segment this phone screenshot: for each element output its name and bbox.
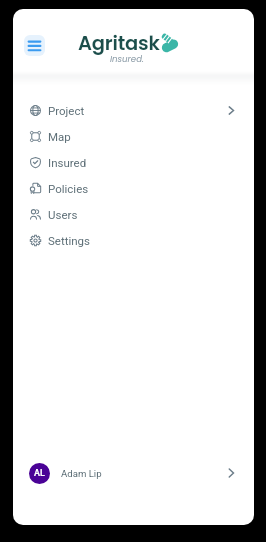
button[interactable]: Settings xyxy=(13,227,254,253)
button[interactable]: Policies xyxy=(13,175,254,201)
staticText: Policies xyxy=(48,182,89,195)
staticText: Users xyxy=(48,208,78,221)
staticText: AL xyxy=(34,468,45,479)
staticText: Adam Lip xyxy=(61,468,102,479)
staticText: Agritask xyxy=(78,30,160,57)
staticText: Insured xyxy=(48,156,87,169)
staticText: Map xyxy=(48,130,71,143)
button[interactable]: AL xyxy=(13,448,254,498)
staticText: Settings xyxy=(48,234,90,247)
button[interactable]: Project xyxy=(13,97,254,123)
button[interactable]: Map xyxy=(13,123,254,149)
staticText: Project xyxy=(48,104,85,117)
button[interactable]: Users xyxy=(13,201,254,227)
staticText: Insured. xyxy=(110,53,144,65)
button[interactable]: Open navigation menu xyxy=(24,35,45,56)
button[interactable]: Insured xyxy=(13,149,254,175)
